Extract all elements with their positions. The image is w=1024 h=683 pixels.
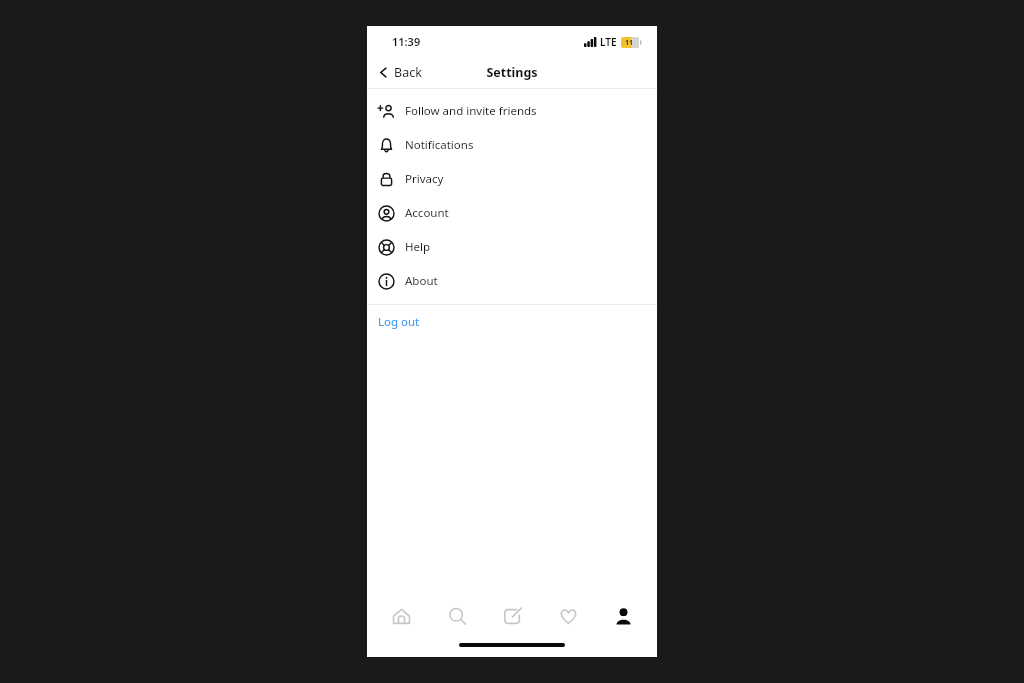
button[interactable]: Search [435, 594, 479, 638]
staticText: Log out [378, 314, 420, 330]
button[interactable]: Profile [601, 594, 645, 638]
button[interactable]: Account [367, 196, 657, 230]
staticText: Follow and invite friends [405, 103, 537, 119]
button[interactable]: About [367, 264, 657, 298]
button[interactable]: Home [379, 594, 423, 638]
button[interactable]: Follow and invite friends [367, 94, 657, 128]
staticText: About [405, 273, 438, 289]
staticText: Account [405, 205, 449, 221]
button[interactable]: Activity [546, 594, 590, 638]
button[interactable]: Back [367, 57, 432, 88]
button[interactable]: Notifications [367, 128, 657, 162]
staticText: Back [394, 64, 422, 81]
staticText: Settings [486, 64, 538, 81]
staticText: Help [405, 239, 431, 255]
staticText: Notifications [405, 137, 474, 153]
staticText: 11:39 [392, 34, 421, 49]
staticText: LTE [600, 35, 617, 49]
button[interactable]: Compose [490, 594, 534, 638]
button[interactable]: Log out [367, 305, 657, 338]
staticText: 11 [625, 38, 634, 48]
staticText: Privacy [405, 171, 444, 187]
button[interactable]: Help [367, 230, 657, 264]
button[interactable]: Privacy [367, 162, 657, 196]
